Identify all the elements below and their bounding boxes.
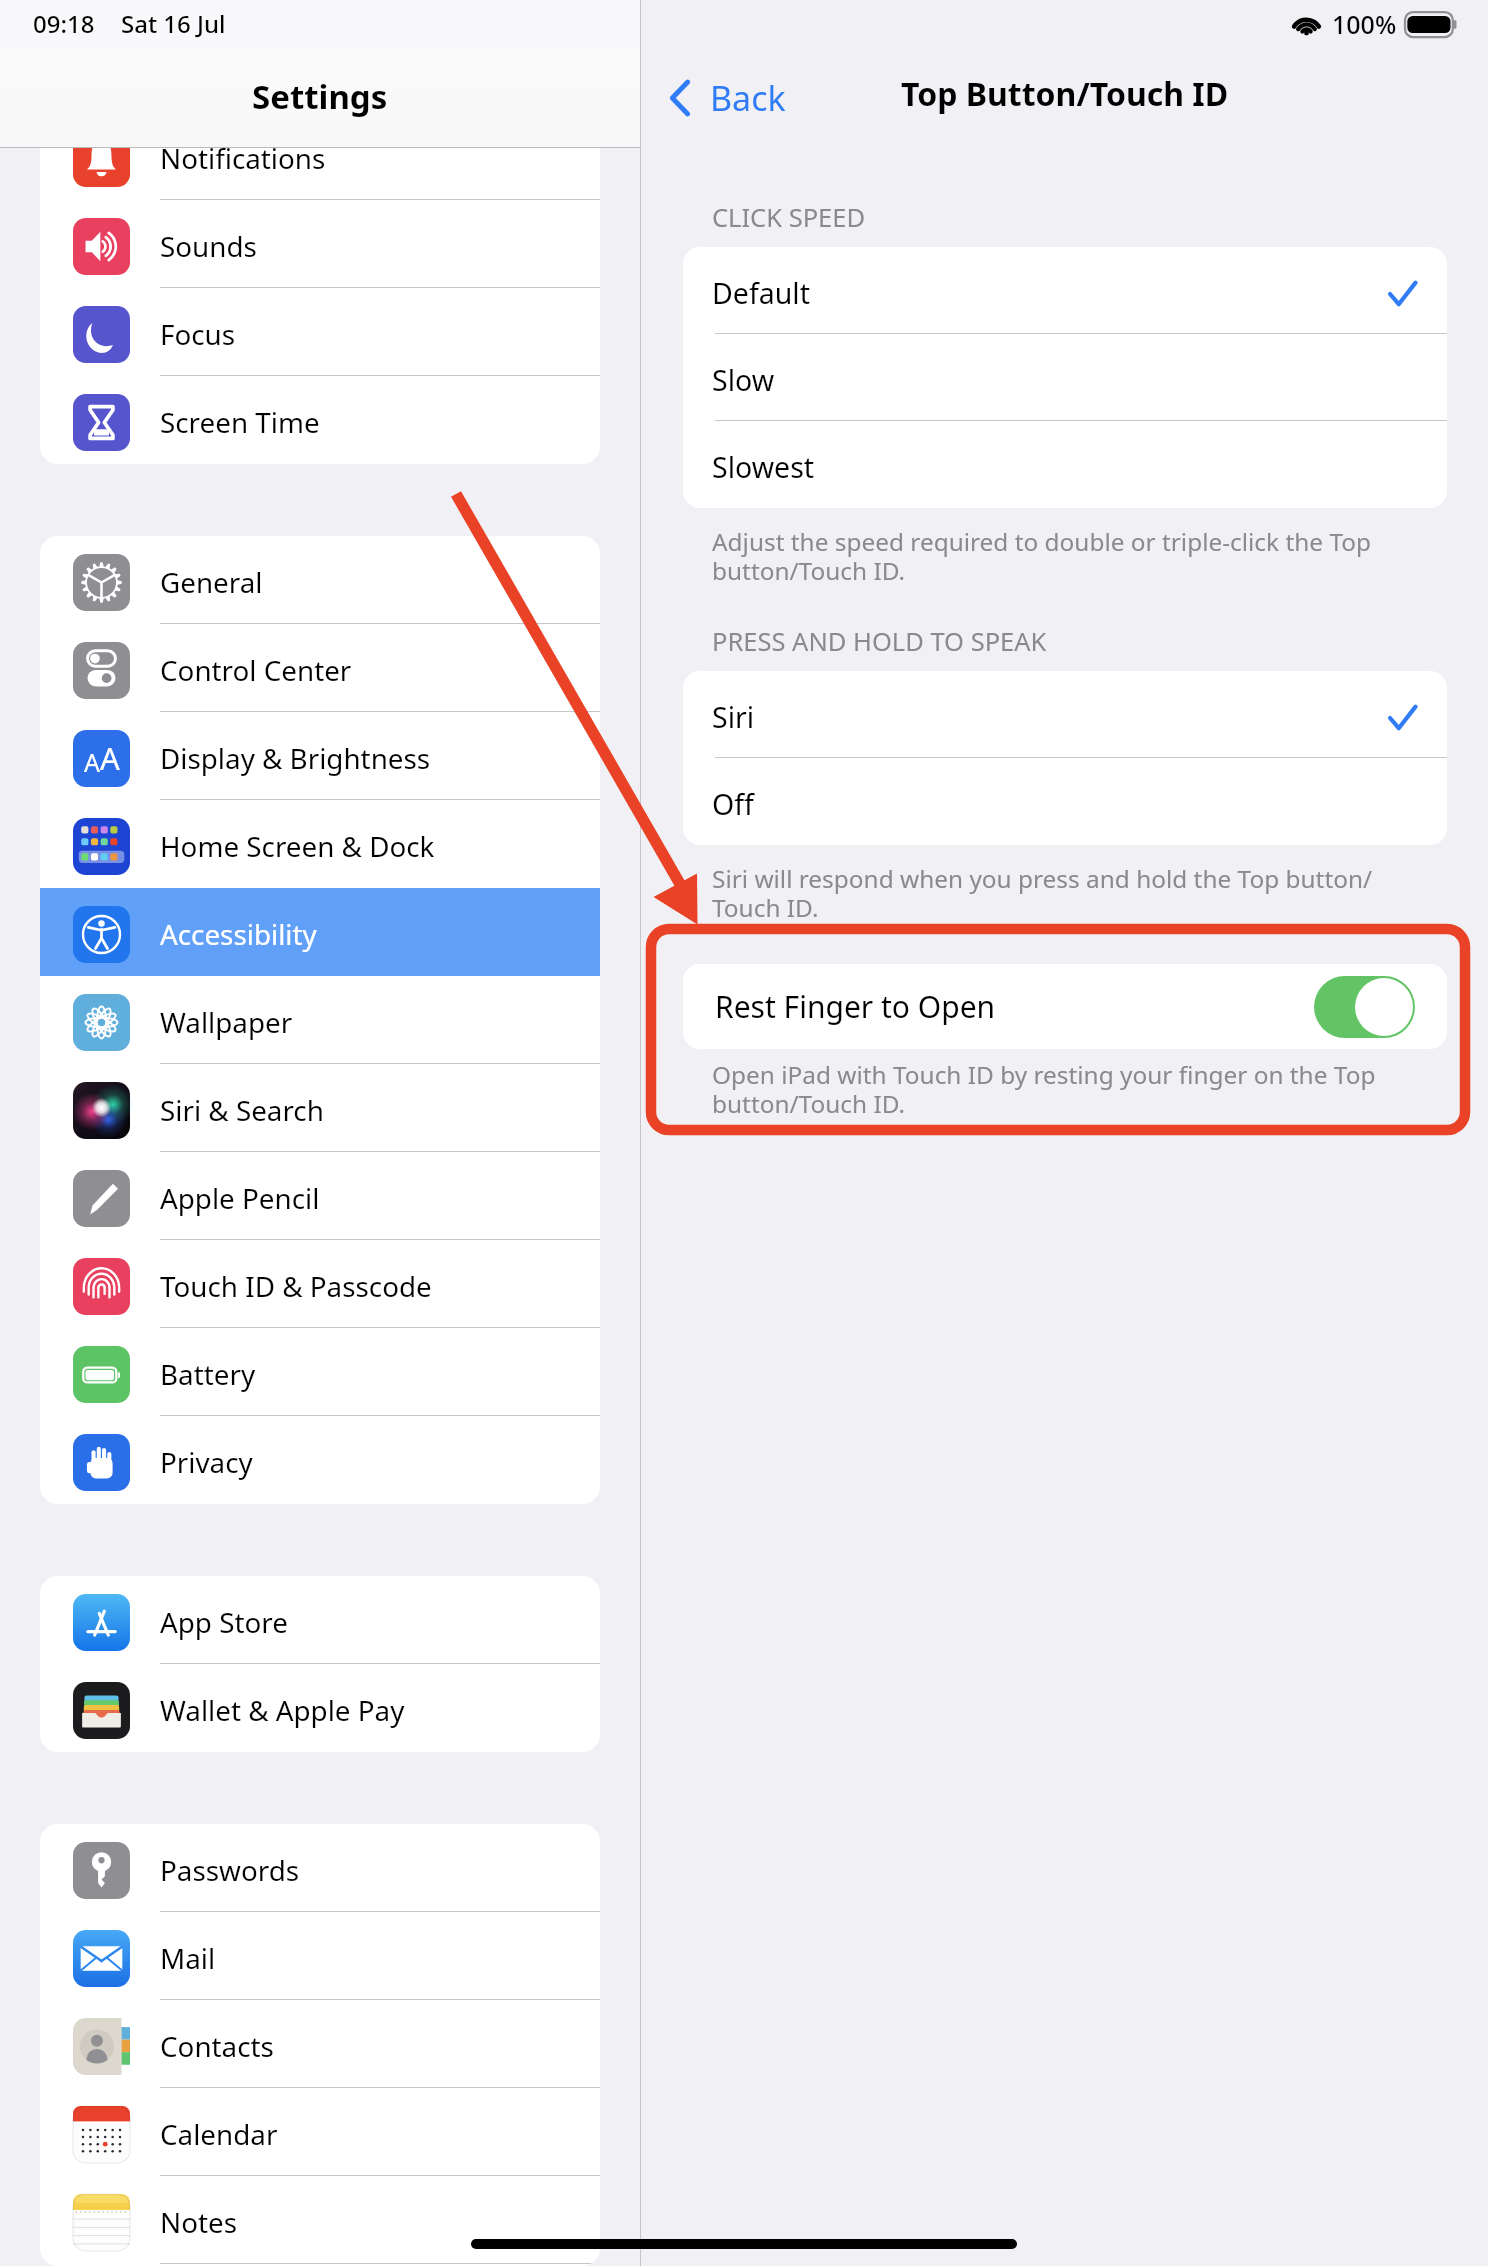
staticText: A <box>84 745 100 779</box>
staticText: 09:18 <box>33 7 95 40</box>
button[interactable]: Notifications <box>40 112 600 200</box>
staticText: Sat 16 Jul <box>121 7 226 40</box>
button[interactable]: Privacy <box>40 1416 600 1504</box>
staticText: General <box>160 563 263 601</box>
staticText: Sounds <box>160 227 257 265</box>
button[interactable]: Rest Finger to Open toggle <box>1314 976 1415 1038</box>
staticText: 100% <box>1332 7 1397 41</box>
staticText: Screen Time <box>160 403 320 441</box>
staticText: Mail <box>160 1939 216 1977</box>
staticText: Adjust the speed required to double or t… <box>712 525 1426 587</box>
staticText: Accessibility <box>160 915 317 953</box>
button[interactable]: Siri & Search <box>40 1064 600 1152</box>
staticText: Notes <box>160 2203 237 2241</box>
button[interactable]: Wallpaper <box>40 976 600 1064</box>
button[interactable]: Touch ID & Passcode <box>40 1240 600 1328</box>
staticText: Control Center <box>160 651 352 689</box>
staticText: Off <box>712 785 754 824</box>
staticText: Slow <box>712 361 775 400</box>
staticText: Open iPad with Touch ID by resting your … <box>712 1058 1426 1120</box>
staticText: Wallet & Apple Pay <box>160 1691 405 1729</box>
staticText: Slowest <box>712 448 815 487</box>
button[interactable]: Calendar <box>40 2088 600 2176</box>
button[interactable]: Wallet & Apple Pay <box>40 1664 600 1752</box>
staticText: Privacy <box>160 1443 253 1481</box>
button[interactable]: Slow <box>683 334 1447 421</box>
button[interactable]: Battery <box>40 1328 600 1416</box>
staticText: Passwords <box>160 1851 300 1889</box>
staticText: CLICK SPEED <box>712 200 866 235</box>
button[interactable]: Passwords <box>40 1824 600 1912</box>
staticText: Rest Finger to Open <box>715 986 996 1027</box>
button[interactable]: Off <box>683 758 1447 845</box>
staticText: Siri <box>712 698 755 737</box>
staticText: Siri will respond when you press and hol… <box>712 862 1426 924</box>
button[interactable]: Apple Pencil <box>40 1152 600 1240</box>
staticText: Home Screen & Dock <box>160 827 435 865</box>
staticText: Apple Pencil <box>160 1179 320 1217</box>
button[interactable]: Slowest <box>683 421 1447 508</box>
staticText: Touch ID & Passcode <box>160 1267 432 1305</box>
button[interactable]: Siri <box>683 671 1447 758</box>
staticText: Contacts <box>160 2027 274 2065</box>
staticText: Top Button/Touch ID <box>901 72 1229 116</box>
button[interactable]: Screen Time <box>40 376 600 464</box>
staticText: Siri & Search <box>160 1091 324 1129</box>
button[interactable]: General <box>40 536 600 624</box>
button[interactable]: A <box>40 712 600 800</box>
button[interactable]: Focus <box>40 288 600 376</box>
button[interactable]: Default <box>683 247 1447 334</box>
staticText: Notifications <box>160 139 326 177</box>
staticText: Settings <box>252 74 388 119</box>
button[interactable]: Sounds <box>40 200 600 288</box>
button[interactable]: Control Center <box>40 624 600 712</box>
staticText: Battery <box>160 1355 256 1393</box>
button[interactable]: Contacts <box>40 2000 600 2088</box>
button[interactable]: App Store <box>40 1576 600 1664</box>
staticText: Back <box>710 75 786 121</box>
staticText: Wallpaper <box>160 1003 293 1041</box>
button[interactable]: Back <box>669 75 786 121</box>
staticText: Focus <box>160 315 236 353</box>
staticText: App Store <box>160 1603 288 1641</box>
button[interactable]: Rest Finger to Open <box>683 964 1447 1049</box>
staticText: Calendar <box>160 2115 278 2153</box>
staticText: A <box>100 737 120 779</box>
button[interactable]: Accessibility <box>40 888 600 976</box>
staticText: Default <box>712 274 810 313</box>
button[interactable]: Mail <box>40 1912 600 2000</box>
staticText: PRESS AND HOLD TO SPEAK <box>712 624 1047 659</box>
button[interactable]: Notes <box>40 2176 600 2264</box>
staticText: Display & Brightness <box>160 739 431 777</box>
button[interactable]: Home Screen & Dock <box>40 800 600 888</box>
